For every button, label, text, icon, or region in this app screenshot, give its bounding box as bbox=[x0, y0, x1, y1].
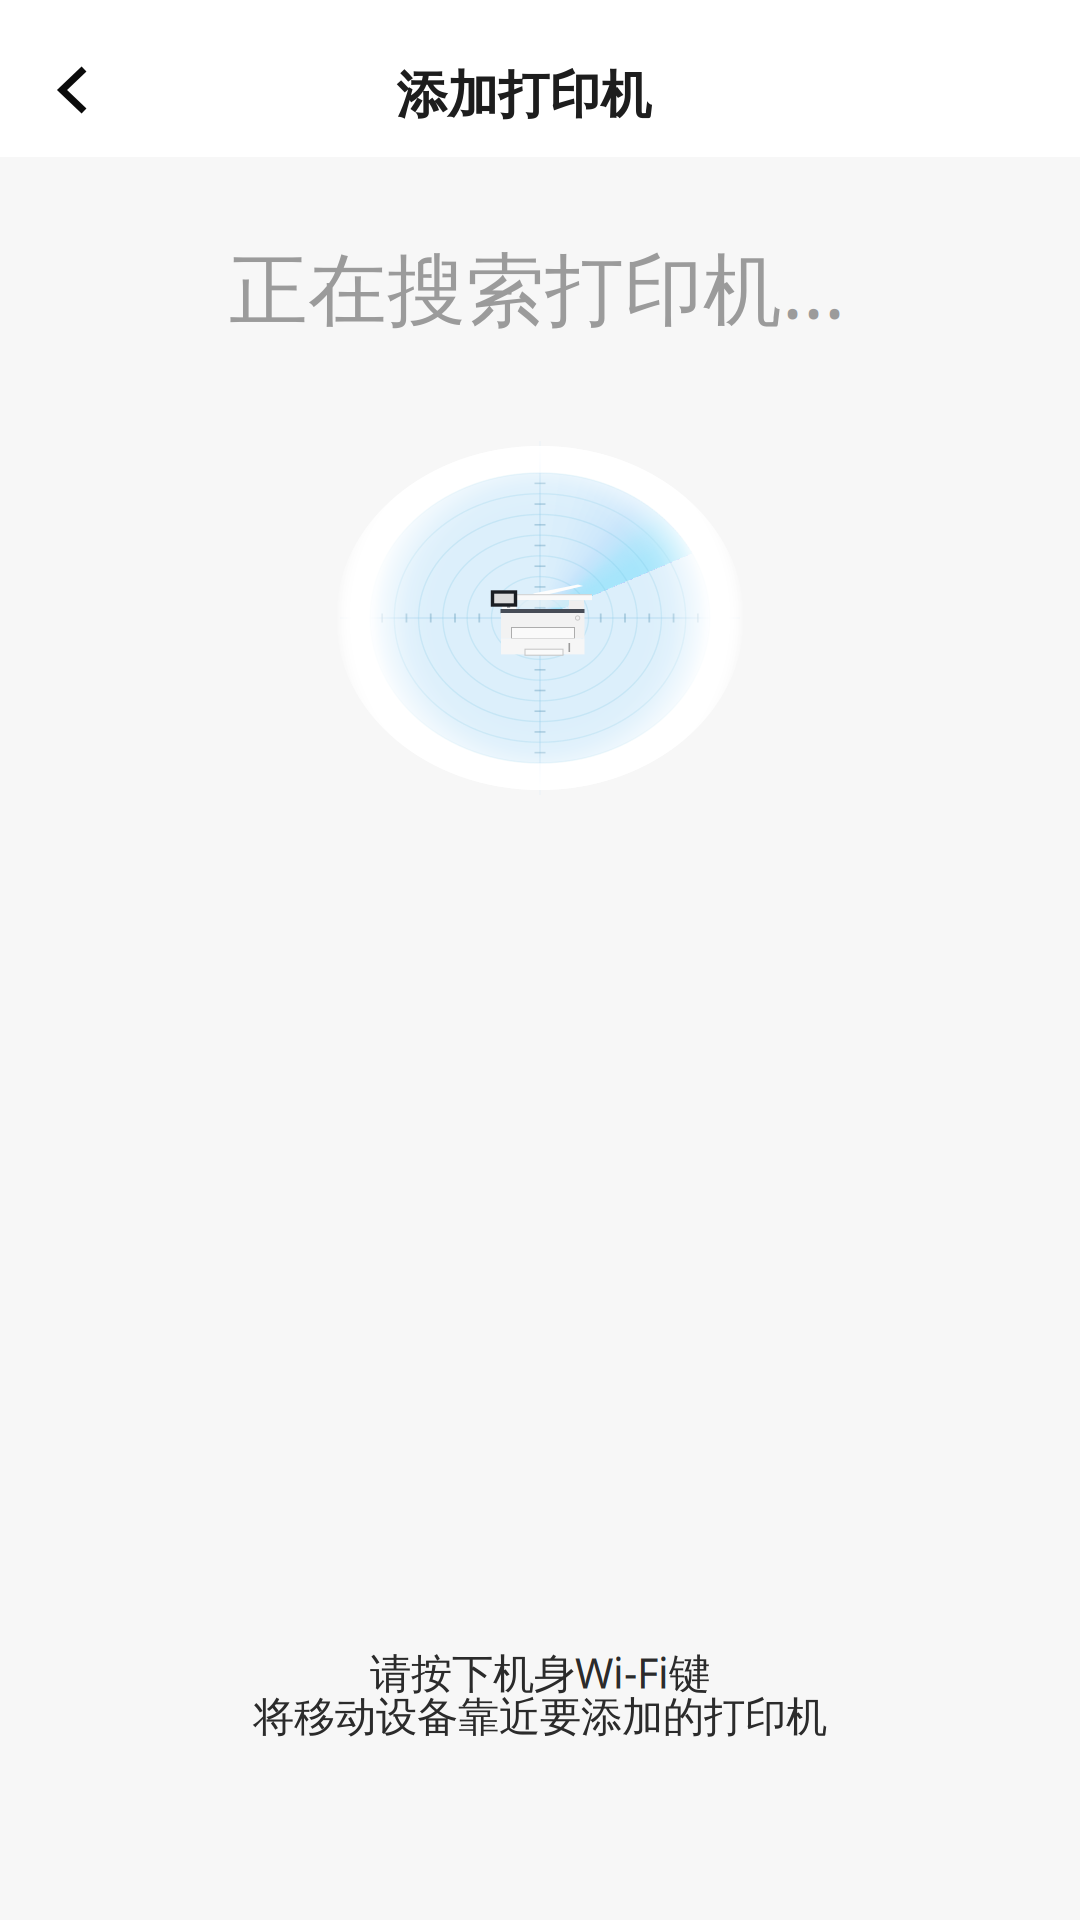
staticText: 将移动设备靠近要添加的打印机 bbox=[253, 1692, 827, 1743]
staticText: 正在搜索打印机... bbox=[229, 236, 845, 340]
staticText: 请按下机身Wi-Fi键 bbox=[370, 1645, 710, 1700]
button[interactable]: Back bbox=[13, 30, 133, 150]
staticText: 添加打印机 bbox=[396, 64, 651, 127]
